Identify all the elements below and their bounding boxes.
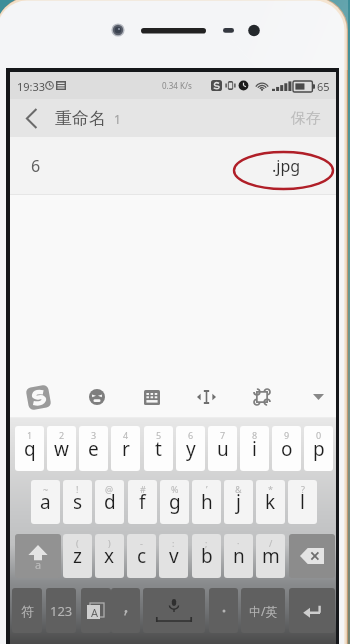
button[interactable]: / — [256, 534, 285, 578]
button[interactable]: @ — [95, 480, 124, 524]
button[interactable]: 6 — [10, 137, 336, 195]
button[interactable]: , — [111, 588, 140, 633]
staticText: ( — [76, 537, 79, 549]
button[interactable]: 1 — [15, 426, 44, 471]
staticText: c — [137, 543, 147, 569]
button[interactable]: & — [224, 480, 253, 524]
staticText: k — [265, 489, 276, 515]
staticText: l — [300, 489, 305, 515]
staticText: b — [201, 543, 213, 569]
button[interactable]: 123 — [46, 588, 76, 633]
staticText: 65 — [317, 79, 330, 94]
staticText: A — [91, 605, 99, 620]
staticText: * — [268, 483, 273, 495]
staticText: r — [122, 436, 130, 462]
button[interactable]: * — [256, 480, 285, 524]
staticText: 4 — [123, 429, 129, 441]
staticText: 6 — [188, 429, 194, 441]
staticText: : — [172, 537, 175, 549]
button[interactable]: ! — [63, 480, 92, 524]
staticText: p — [313, 436, 325, 462]
button[interactable]: # — [128, 480, 157, 524]
button[interactable]: % — [160, 480, 189, 524]
staticText: 符 — [21, 603, 34, 619]
button[interactable]: 保存 — [282, 101, 330, 136]
button[interactable]: 3 — [79, 426, 108, 471]
staticText: t — [155, 436, 162, 462]
button[interactable]: Sogou input — [14, 376, 62, 418]
button[interactable]: 7 — [208, 426, 237, 471]
button[interactable]: ’ — [192, 480, 221, 524]
staticText: u — [217, 436, 229, 462]
button[interactable]: 9 — [272, 426, 301, 471]
staticText: & — [235, 483, 242, 495]
staticText: a — [40, 489, 51, 515]
button[interactable]: · — [224, 534, 253, 578]
staticText: j — [236, 489, 241, 515]
staticText: o — [281, 436, 293, 462]
staticText: 0 — [316, 429, 322, 441]
staticText: ? — [301, 483, 305, 495]
staticText: s — [73, 489, 83, 515]
button[interactable]: ; — [192, 534, 221, 578]
staticText: d — [104, 489, 116, 515]
button[interactable]: 6 — [176, 426, 205, 471]
staticText: # — [140, 483, 146, 495]
button[interactable]: 5 — [144, 426, 173, 471]
staticText: i — [252, 436, 257, 462]
staticText: w — [54, 436, 69, 462]
button[interactable]: ( — [63, 534, 92, 578]
staticText: m — [262, 543, 280, 569]
staticText: 123 — [50, 602, 73, 620]
button[interactable]: 0 — [304, 426, 333, 471]
button[interactable]: Backspace — [289, 534, 335, 578]
button[interactable]: Keyboard layout — [131, 376, 173, 418]
staticText: 重命名 — [55, 108, 106, 129]
button[interactable]: A — [81, 588, 111, 633]
staticText: 1 — [114, 111, 121, 127]
button[interactable]: ) — [95, 534, 124, 578]
staticText: ~ — [43, 483, 49, 495]
button[interactable]: Settings — [241, 376, 283, 418]
button[interactable]: space — [143, 588, 205, 633]
button[interactable]: Move cursor — [185, 376, 227, 418]
button[interactable]: enter — [289, 588, 335, 633]
staticText: 3 — [91, 429, 97, 441]
staticText: x — [104, 543, 115, 569]
button[interactable]: 中/英 — [241, 588, 285, 633]
staticText: 5 — [156, 429, 162, 441]
button[interactable]: Hide keyboard — [297, 376, 339, 418]
staticText: n — [233, 543, 245, 569]
staticText: @ — [105, 483, 114, 495]
button[interactable]: 符 — [12, 588, 42, 633]
staticText: g — [169, 489, 181, 515]
button[interactable]: 4 — [111, 426, 140, 471]
staticText: 6 — [31, 155, 41, 177]
staticText: 0.34 K/s — [162, 80, 192, 91]
staticText: f — [139, 489, 146, 515]
button[interactable]: 2 — [47, 426, 76, 471]
staticText: 19:33 — [17, 79, 46, 94]
button[interactable]: Emoji — [76, 376, 118, 418]
staticText: 中/英 — [249, 603, 278, 619]
staticText: 2 — [59, 429, 65, 441]
staticText: e — [88, 436, 99, 462]
button[interactable]: - — [127, 534, 156, 578]
staticText: 保存 — [291, 109, 321, 128]
staticText: q — [24, 436, 36, 462]
staticText: z — [73, 543, 82, 569]
staticText: h — [201, 489, 213, 515]
button[interactable]: : — [159, 534, 188, 578]
staticText: ) — [108, 537, 111, 549]
staticText: / — [269, 537, 273, 549]
button[interactable]: Shift — [15, 534, 61, 578]
button[interactable]: . — [209, 588, 238, 633]
staticText: a — [35, 557, 42, 572]
button[interactable]: Back — [16, 99, 46, 137]
button[interactable]: ? — [288, 480, 317, 524]
button[interactable]: 8 — [240, 426, 269, 471]
staticText: 9 — [284, 429, 290, 441]
button[interactable]: ~ — [31, 480, 60, 524]
staticText: ! — [76, 483, 79, 495]
staticText: y — [186, 436, 196, 462]
